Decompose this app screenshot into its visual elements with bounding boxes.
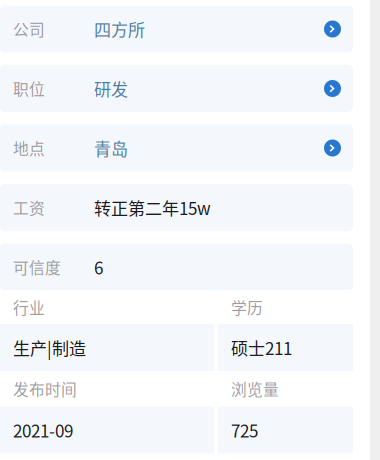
- button[interactable]: 公司: [0, 5, 353, 52]
- staticText: 生产|制造: [13, 335, 86, 360]
- staticText: 6: [94, 255, 103, 279]
- staticText: 四方所: [94, 17, 145, 41]
- staticText: 职位: [13, 77, 45, 100]
- staticText: 转正第二年15w: [94, 195, 211, 220]
- staticText: 工资: [13, 196, 45, 219]
- staticText: 研发: [94, 76, 128, 101]
- staticText: 公司: [13, 18, 45, 40]
- staticText: 学历: [231, 296, 263, 319]
- staticText: 浏览量: [231, 377, 279, 400]
- button[interactable]: 职位: [0, 65, 353, 112]
- button[interactable]: 地点: [0, 124, 353, 171]
- staticText: 青岛: [94, 136, 128, 160]
- staticText: 725: [231, 418, 258, 442]
- button[interactable]: 可信度: [0, 243, 353, 290]
- staticText: 发布时间: [13, 377, 77, 400]
- staticText: 行业: [13, 296, 45, 319]
- staticText: 可信度: [13, 256, 61, 278]
- staticText: 2021-09: [13, 418, 73, 442]
- staticText: 地点: [13, 137, 45, 159]
- staticText: 硕士211: [231, 335, 292, 360]
- button[interactable]: 工资: [0, 184, 353, 231]
